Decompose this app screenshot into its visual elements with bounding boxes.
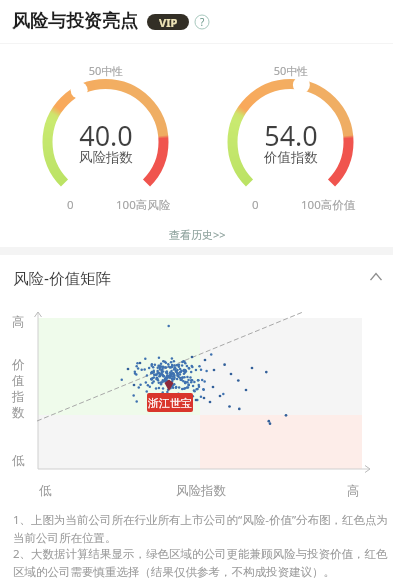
staticText: 100高价值 [301,197,356,213]
button[interactable]: 浙江世宝 [147,393,193,412]
button[interactable]: 查看历史>> [160,226,234,242]
staticText: 风险-价值矩阵 [13,267,111,288]
staticText: ? [200,15,205,29]
staticText: 1、上图为当前公司所在行业所有上市公司的“风险-价值”分布图，红色点为当前公司所… [13,512,389,546]
staticText: 40.0 [46,117,166,154]
staticText: 高 [347,483,360,499]
button[interactable]: 帮助 [194,14,210,30]
staticText: 54.0 [231,117,351,154]
staticText: 价 [12,357,25,373]
staticText: 价值指数 [231,149,351,166]
staticText: 100高风险 [116,197,171,213]
staticText: 50中性 [56,63,156,78]
staticText: VIP [159,15,178,30]
staticText: 50中性 [241,63,341,78]
staticText: 数 [12,405,25,421]
staticText: 风险指数 [176,483,226,499]
staticText: 低 [12,453,25,469]
staticText: 低 [39,483,52,499]
staticText: 风险指数 [46,149,166,166]
staticText: 0 [252,197,259,213]
button[interactable]: 风险-价值矩阵 [13,261,381,293]
staticText: 0 [67,197,74,213]
button[interactable]: VIP [147,14,189,30]
staticText: 高 [12,314,25,330]
staticText: 风险与投资亮点 [12,10,138,33]
other: 收起 [369,270,383,284]
staticText: 2、大数据计算结果显示，绿色区域的公司更能兼顾风险与投资价值，红色区域的公司需要… [13,546,389,580]
staticText: 浙江世宝 [148,396,192,410]
staticText: 指 [12,389,25,405]
staticText: 值 [12,373,25,389]
staticText: 查看历史>> [169,227,226,242]
